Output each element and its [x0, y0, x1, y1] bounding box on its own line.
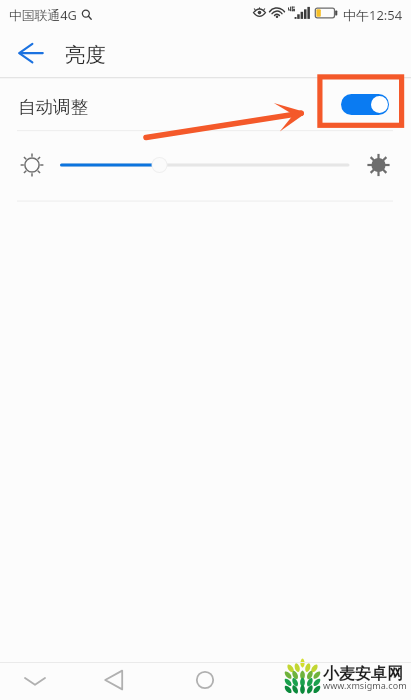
staticText: 亮度: [65, 42, 106, 68]
staticText: 自动调整: [18, 96, 88, 118]
staticText: 小麦安卓网: [323, 664, 403, 684]
button[interactable]: Hide keyboard: [15, 660, 55, 700]
button[interactable]: Automatic brightness switch, on: [341, 94, 389, 115]
button[interactable]: Back: [8, 29, 54, 75]
button[interactable]: Home: [185, 660, 225, 700]
staticText: 中午12:54: [343, 6, 403, 24]
staticText: 中国联通4G: [9, 6, 77, 23]
button[interactable]: 自动调整: [0, 78, 411, 131]
button[interactable]: Brightness level: [0, 131, 411, 200]
button[interactable]: Back: [96, 660, 136, 700]
staticText: www.xmsigma.com: [323, 679, 407, 691]
